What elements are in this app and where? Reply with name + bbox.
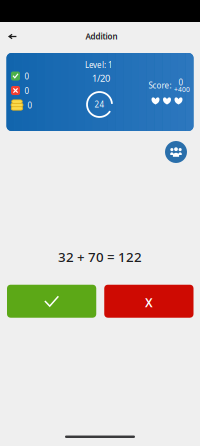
button[interactable]: Multiplayer xyxy=(165,141,187,163)
staticText: Level: 1 xyxy=(85,59,113,70)
button[interactable]: Correct xyxy=(7,285,96,318)
staticText: +400 xyxy=(174,85,190,94)
button[interactable]: Back xyxy=(0,29,25,46)
staticText: 0 xyxy=(24,85,29,96)
button[interactable]: Wrong xyxy=(104,285,193,318)
staticText: Score: xyxy=(148,80,171,91)
staticText: 0 xyxy=(24,71,29,82)
staticText: 24 xyxy=(94,99,104,110)
staticText: X xyxy=(145,295,153,311)
staticText: 32 + 70 = 122 xyxy=(58,248,142,266)
staticText: Addition xyxy=(85,31,117,42)
staticText: 0 xyxy=(178,77,183,88)
staticText: 1/20 xyxy=(92,72,110,84)
staticText: 0 xyxy=(27,100,32,111)
